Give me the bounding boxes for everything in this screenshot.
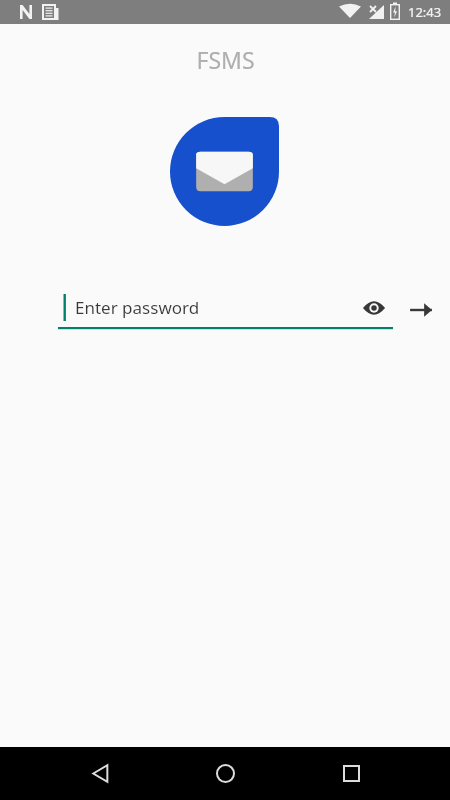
staticText: 12:43: [408, 3, 442, 21]
button[interactable]: Show password: [358, 292, 390, 324]
button[interactable]: Enter password: [58, 284, 393, 336]
staticText: Enter password: [75, 296, 200, 319]
button[interactable]: Home: [199, 747, 251, 800]
button[interactable]: Recent apps: [325, 747, 377, 800]
staticText: FSMS: [196, 44, 255, 75]
button[interactable]: Submit: [404, 293, 438, 327]
button[interactable]: Back: [74, 747, 126, 800]
